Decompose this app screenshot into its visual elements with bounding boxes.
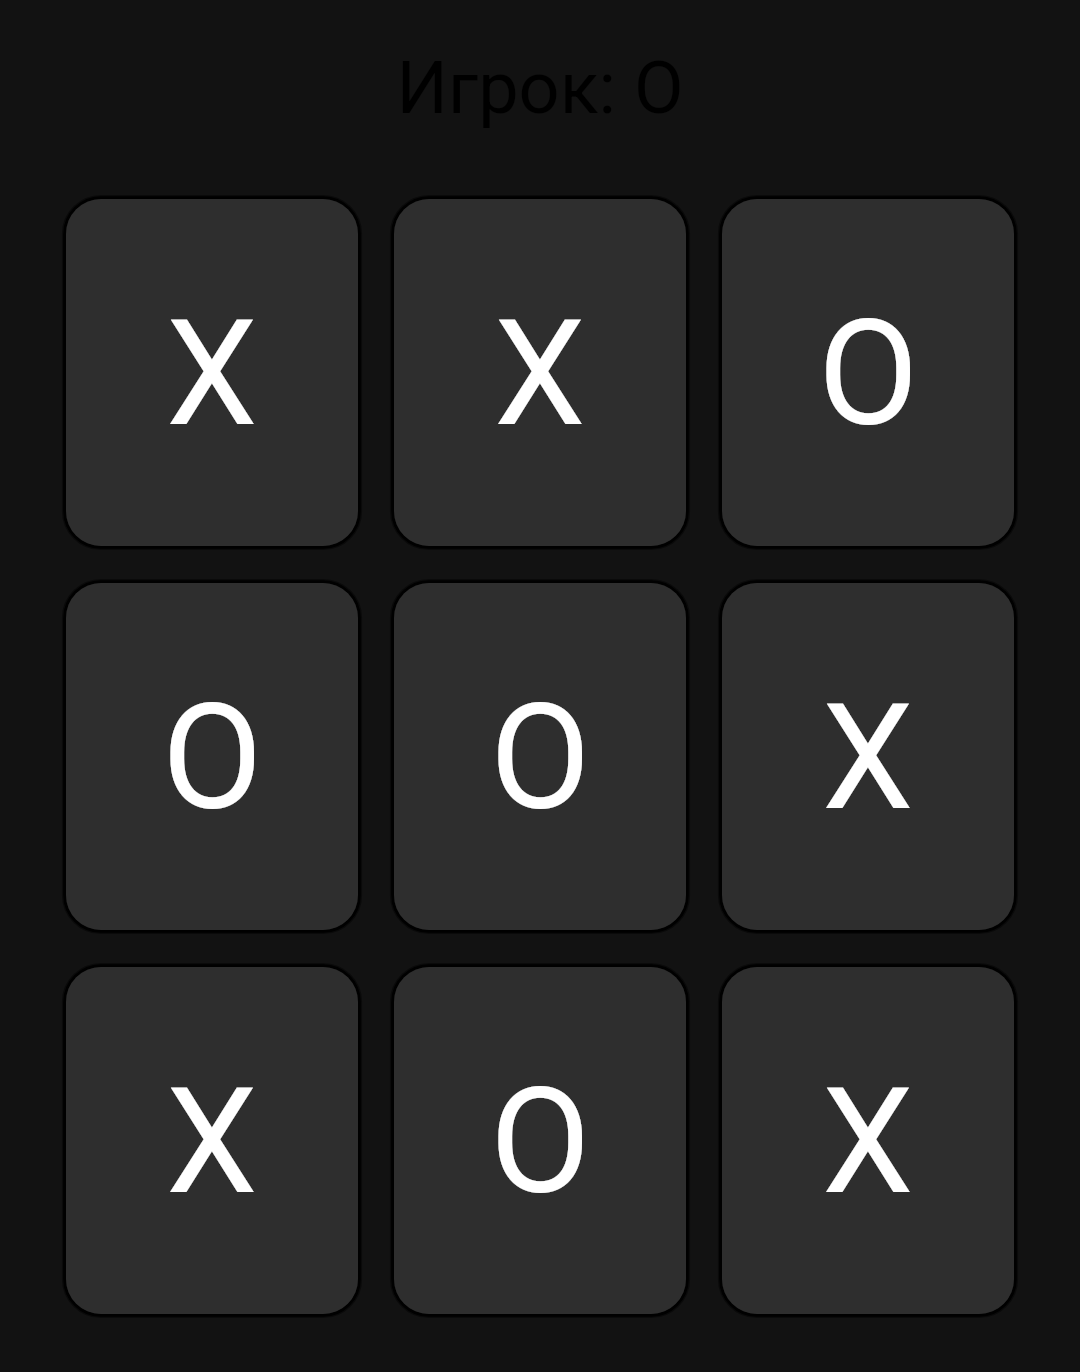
button[interactable]: Cell 3,1: X [66, 967, 358, 1314]
button[interactable]: Cell 1,2: X [394, 199, 686, 546]
staticText: X [822, 1057, 914, 1228]
staticText: X [166, 1057, 258, 1228]
button[interactable]: Cell 3,3: X [722, 967, 1014, 1314]
staticText: X [822, 673, 914, 844]
staticText: X [166, 289, 258, 460]
staticText: X [494, 289, 586, 460]
button[interactable]: Cell 2,1: O [66, 583, 358, 930]
staticText: Игрок: O [0, 46, 1080, 130]
button[interactable]: Cell 2,2: O [394, 583, 686, 930]
button[interactable]: Cell 2,3: X [722, 583, 1014, 930]
button[interactable]: Cell 1,3: O [722, 199, 1014, 546]
button[interactable]: Cell 3,2: O [394, 967, 686, 1314]
staticText: O [490, 1057, 591, 1228]
staticText: O [162, 673, 263, 844]
staticText: O [818, 289, 919, 460]
staticText: O [490, 673, 591, 844]
button[interactable]: Cell 1,1: X [66, 199, 358, 546]
